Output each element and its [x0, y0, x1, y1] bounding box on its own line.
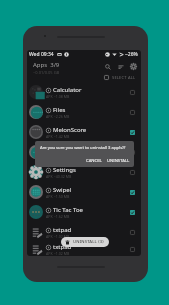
- button[interactable]: Settings: [127, 60, 140, 73]
- button[interactable]: Tic Tac Toe: [27, 202, 141, 222]
- staticText: ~26%: [125, 51, 138, 58]
- staticText: ~0.01/0.05 GB: [33, 70, 60, 75]
- button[interactable]: SELECT ALL: [103, 74, 137, 81]
- staticText: txtpad: [53, 226, 72, 234]
- button[interactable]: Select MelonScore: [128, 128, 137, 137]
- staticText: Are you sure you want to uninstall 3 app…: [40, 145, 126, 151]
- staticText: Calculator: [53, 86, 82, 94]
- button[interactable]: MelonScore: [27, 122, 141, 142]
- staticText: APK ~40.32 MB: [46, 174, 72, 179]
- button[interactable]: Files: [27, 102, 141, 122]
- button[interactable]: Select txtpad: [128, 245, 137, 254]
- button[interactable]: Select Swipel: [128, 188, 137, 197]
- button[interactable]: Swipel: [27, 182, 141, 202]
- staticText: Apps 3/9: [33, 61, 60, 69]
- staticText: APK ~1.50 MB: [46, 194, 70, 199]
- staticText: APK ~1.02 MB: [46, 234, 70, 239]
- button[interactable]: Select Files: [128, 108, 137, 117]
- button[interactable]: Select Calculator: [128, 88, 137, 97]
- staticText: Settings: [53, 166, 76, 174]
- staticText: APK ~1.62 MB: [46, 214, 70, 219]
- button[interactable]: Select Messages: [128, 148, 137, 157]
- button[interactable]: Messages: [27, 142, 141, 162]
- staticText: SELECT ALL: [112, 75, 136, 80]
- staticText: MelonScore: [53, 126, 87, 134]
- button[interactable]: UNINSTALL (3): [61, 237, 109, 247]
- staticText: UNINSTALL: [107, 158, 130, 164]
- button[interactable]: Search: [101, 60, 114, 73]
- staticText: APK ~1.42 MB: [46, 134, 70, 139]
- staticText: APK ~1.02 MB: [46, 251, 70, 256]
- staticText: CANCEL: [86, 158, 102, 164]
- staticText: UNINSTALL (3): [73, 239, 104, 245]
- staticText: APK ~1.08 MB: [46, 94, 70, 99]
- staticText: Wed 09:34: [29, 51, 54, 58]
- button[interactable]: Select txtpad: [128, 228, 137, 237]
- button[interactable]: Select Tic Tac Toe: [128, 208, 137, 217]
- staticText: Tic Tac Toe: [53, 206, 83, 214]
- button[interactable]: Select Settings: [128, 168, 137, 177]
- button[interactable]: txtpad: [27, 242, 141, 256]
- button[interactable]: CANCEL: [84, 157, 104, 165]
- button[interactable]: Calculator: [27, 82, 141, 102]
- staticText: Files: [53, 106, 66, 114]
- button[interactable]: Settings: [27, 162, 141, 182]
- button[interactable]: Sort: [114, 60, 127, 73]
- staticText: Swipel: [53, 186, 72, 194]
- staticText: txtpad: [53, 243, 72, 251]
- staticText: Messages: [53, 146, 81, 154]
- button[interactable]: UNINSTALL: [105, 157, 132, 165]
- button[interactable]: txtpad: [27, 222, 141, 242]
- staticText: APK ~2.26 MB: [46, 114, 70, 119]
